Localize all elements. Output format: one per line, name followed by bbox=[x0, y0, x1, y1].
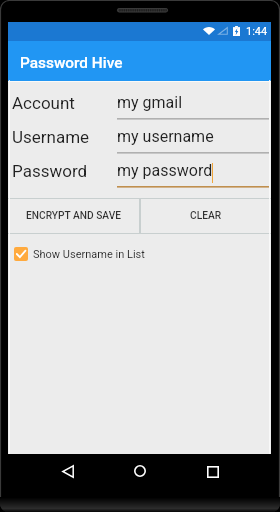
staticText: my username bbox=[117, 127, 214, 146]
staticText: my password bbox=[117, 161, 213, 180]
staticText: Account bbox=[12, 93, 75, 113]
staticText: Show Username in List bbox=[33, 248, 145, 261]
staticText: 1:44 bbox=[246, 25, 268, 38]
button[interactable]: Recents bbox=[199, 458, 227, 486]
staticText: CLEAR bbox=[190, 210, 222, 222]
button[interactable]: CLEAR bbox=[141, 198, 271, 234]
staticText: ENCRYPT AND SAVE bbox=[26, 210, 122, 222]
staticText: my gmail bbox=[117, 93, 183, 112]
staticText: Username bbox=[12, 127, 90, 147]
button[interactable]: ENCRYPT AND SAVE bbox=[8, 198, 139, 234]
staticText: Password bbox=[12, 161, 88, 181]
button[interactable]: Show Username in List bbox=[14, 240, 145, 268]
staticText: Password Hive bbox=[20, 54, 123, 72]
button[interactable]: Home bbox=[126, 457, 154, 485]
button[interactable]: Back bbox=[54, 457, 82, 485]
